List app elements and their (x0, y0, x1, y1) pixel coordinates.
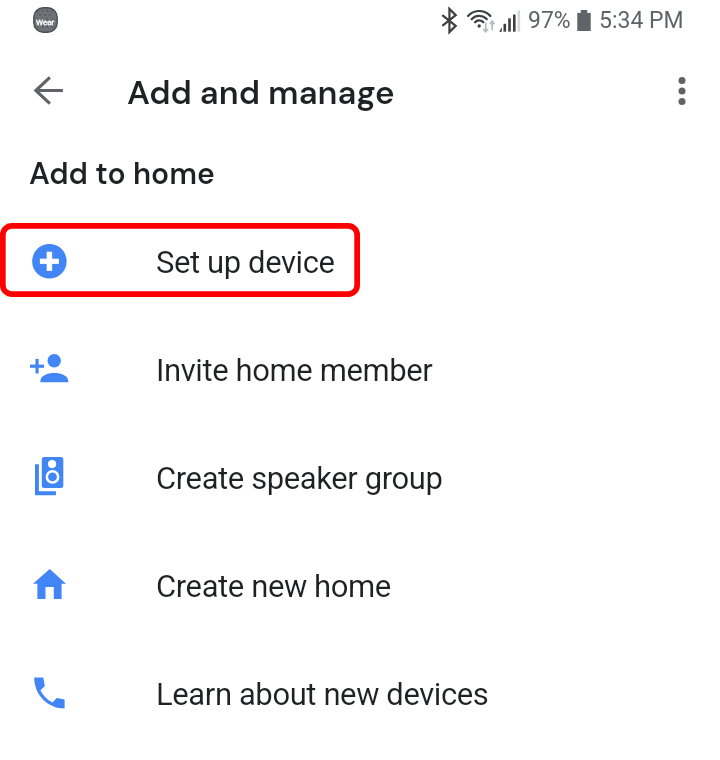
button[interactable]: Set up device (0, 208, 720, 316)
staticText: Learn about new devices (156, 676, 489, 712)
staticText: Wear (36, 18, 55, 27)
staticText: Invite home member (156, 352, 433, 388)
staticText: Set up device (156, 244, 335, 280)
staticText: Create new home (156, 568, 391, 604)
staticText: 5:34 PM (599, 7, 684, 34)
button[interactable]: Learn about new devices (0, 640, 720, 748)
button[interactable]: Create speaker group (0, 424, 720, 532)
button[interactable]: Back (25, 66, 73, 114)
staticText: 97% (528, 7, 571, 34)
staticText: Add to home (29, 154, 215, 193)
button[interactable]: More options (658, 67, 706, 115)
staticText: Add and manage (127, 71, 395, 114)
button[interactable]: Create new home (0, 532, 720, 640)
staticText: Create speaker group (156, 460, 443, 496)
button[interactable]: Invite home member (0, 316, 720, 424)
